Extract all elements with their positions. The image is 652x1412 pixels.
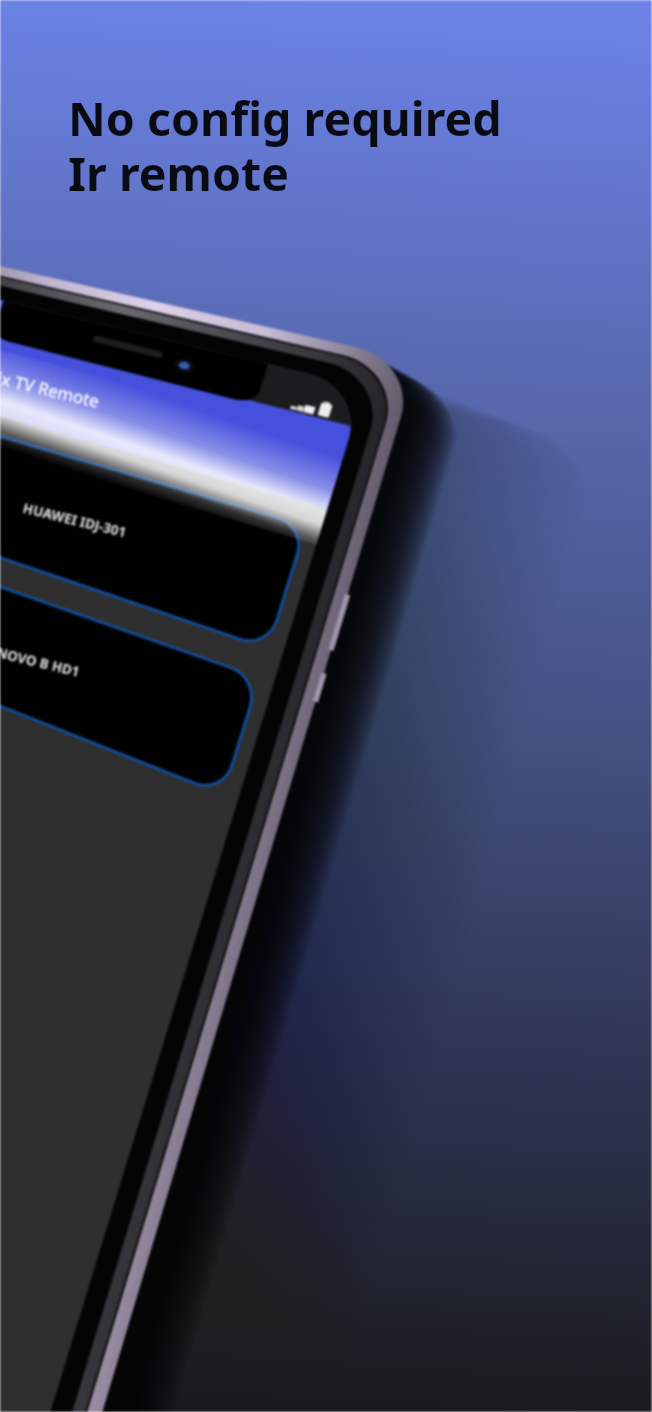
staticText: No config required Ir remote xyxy=(68,86,502,205)
staticText: LENOVO B HD1 xyxy=(0,640,81,681)
staticText: mix TV Remote xyxy=(0,363,102,413)
staticText: HUAWEI IDJ-301 xyxy=(21,499,128,541)
